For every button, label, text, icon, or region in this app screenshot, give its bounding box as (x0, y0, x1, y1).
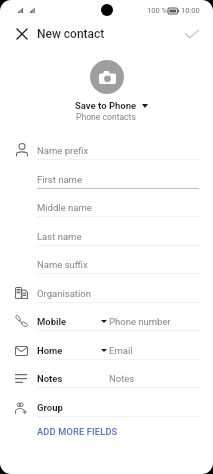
staticText: Name suffix (37, 259, 88, 270)
staticText: ADD MORE FIELDS (37, 426, 118, 437)
staticText: New contact (37, 27, 105, 41)
staticText: Middle name (37, 202, 92, 213)
button[interactable]: Notes (0, 359, 213, 388)
button[interactable]: Close (10, 22, 33, 45)
button[interactable]: Save contact (181, 23, 203, 45)
staticText: Mobile (37, 316, 67, 327)
button[interactable]: Middle name (0, 188, 213, 217)
button[interactable]: Name suffix (0, 245, 213, 274)
button[interactable]: Save to Phone (75, 100, 148, 111)
button[interactable]: ADD MORE FIELDS (0, 417, 213, 445)
staticText: Notes (37, 373, 63, 384)
staticText: First name (37, 174, 82, 185)
button[interactable]: Group (0, 388, 213, 417)
button[interactable]: Home (0, 331, 213, 360)
staticText: Group (37, 402, 63, 413)
staticText: Phone contacts (76, 112, 136, 122)
staticText: Last name (37, 231, 82, 242)
button[interactable]: Mobile (0, 302, 213, 331)
button[interactable]: First name (0, 160, 213, 189)
button[interactable]: Name prefix (0, 131, 213, 160)
staticText: Save to Phone (75, 100, 137, 111)
staticText: 100 % (147, 6, 167, 15)
button[interactable]: Last name (0, 217, 213, 246)
button[interactable]: Organisation (0, 274, 213, 303)
staticText: Email (109, 345, 133, 356)
staticText: Phone number (109, 316, 171, 327)
staticText: 10:00 (181, 6, 200, 15)
staticText: Notes (109, 373, 135, 384)
staticText: Home (37, 345, 63, 356)
staticText: Name prefix (37, 145, 89, 156)
button[interactable]: Add photo (90, 60, 124, 94)
staticText: Organisation (37, 288, 91, 299)
